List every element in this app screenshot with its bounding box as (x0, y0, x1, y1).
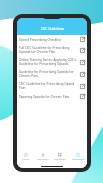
button[interactable]: CDC Guideline for Prescribing Opioid Pai… (17, 80, 87, 92)
staticText: Documents (72, 158, 85, 161)
staticText: Full CDC Guideline for Prescribing Opioi… (19, 46, 78, 54)
button[interactable]: Guideline for Prescribing Opioids for Ch… (17, 68, 87, 80)
button[interactable]: Online Training Series: Applying CDC's G… (17, 56, 87, 68)
other: Open link (80, 94, 85, 99)
button[interactable]: Full CDC Guideline for Prescribing Opioi… (17, 44, 87, 56)
staticText: Guideline for Prescribing Opioids for Ch… (19, 70, 78, 78)
staticText: CDC Guideline for Prescribing Opioid Pai… (19, 82, 78, 90)
staticText: Tapering Opioids for Chronic Pain (19, 95, 78, 99)
staticText: CDC Guidelines (41, 27, 64, 31)
button[interactable]: Home (17, 153, 34, 161)
staticText: Guidelines (54, 158, 66, 161)
button[interactable]: Documents (69, 153, 87, 161)
other: Open link (80, 37, 85, 42)
button[interactable]: Guidelines (51, 153, 69, 161)
other: Open link (80, 84, 85, 89)
other: Open link (80, 48, 85, 53)
staticText: Home (22, 158, 29, 161)
button[interactable]: Tapering Opioids for Chronic Pain (17, 92, 87, 101)
button[interactable]: Resources (34, 153, 51, 161)
staticText: Opioid Prescribing Checklist (19, 38, 78, 42)
staticText: Resources (37, 158, 49, 161)
staticText: Online Training Series: Applying CDC's G… (19, 58, 78, 66)
button[interactable]: Opioid Prescribing Checklist (17, 35, 87, 44)
other: Open link (80, 72, 85, 77)
other: Open link (80, 60, 85, 65)
